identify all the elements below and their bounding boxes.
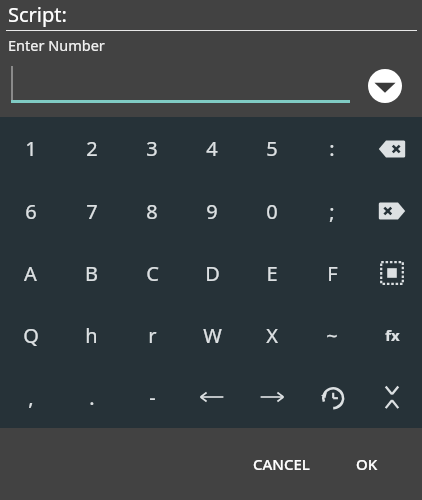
button[interactable]: W [182,304,242,366]
button[interactable]: Show dropdown [368,69,402,103]
button[interactable]: History [302,366,362,428]
staticText: W [203,322,222,349]
staticText: 3 [146,135,158,162]
button[interactable]: E [242,242,302,304]
staticText: CANCEL [253,454,310,474]
button[interactable]: CANCEL [239,444,324,484]
button[interactable]: 1 [0,117,61,180]
staticText: OK [356,454,378,474]
button[interactable]: Delete [362,180,422,242]
staticText: 8 [146,198,158,225]
button[interactable]: 5 [242,117,302,180]
button[interactable]: : [302,117,362,180]
button[interactable]: Q [0,304,61,366]
staticText: fx [385,325,400,345]
button[interactable]: Backspace [362,117,422,180]
staticText: : [329,135,335,162]
staticText: 1 [25,135,37,162]
staticText: 7 [86,198,98,225]
staticText: Enter Number [8,35,105,55]
button[interactable]: ; [302,180,362,242]
button[interactable]: . [61,366,122,428]
button[interactable]: 0 [242,180,302,242]
staticText: E [266,260,278,287]
staticText: - [149,384,156,411]
staticText: C [146,260,159,287]
staticText: ~ [326,322,338,349]
button[interactable]: 7 [61,180,122,242]
staticText: 2 [86,135,98,162]
button[interactable]: C [122,242,182,304]
staticText: . [89,384,95,411]
button[interactable]: h [61,304,122,366]
staticText: 0 [266,198,278,225]
button[interactable]: 9 [182,180,242,242]
staticText: D [205,260,220,287]
staticText: B [85,260,98,287]
staticText: Q [23,322,39,349]
button[interactable]: A [0,242,61,304]
staticText: h [85,322,98,349]
button[interactable]: F [302,242,362,304]
button[interactable]: 6 [0,180,61,242]
staticText: F [327,260,338,287]
button[interactable]: Hide keyboard [362,366,422,428]
button[interactable]: 2 [61,117,122,180]
button[interactable]: 8 [122,180,182,242]
staticText: A [24,260,37,287]
staticText: ; [329,198,335,225]
staticText: r [148,322,157,349]
button[interactable]: Move cursor left [182,366,242,428]
staticText: 5 [266,135,278,162]
staticText: X [266,322,278,349]
button[interactable]: X [242,304,302,366]
button[interactable]: OK [342,444,392,484]
button[interactable]: r [122,304,182,366]
button[interactable]: Select all [362,242,422,304]
staticText: 4 [206,135,218,162]
button[interactable]: - [122,366,182,428]
button[interactable]: fx [362,304,422,366]
button[interactable]: , [0,366,61,428]
staticText: Script: [8,1,67,28]
button[interactable]: B [61,242,122,304]
staticText: , [28,384,34,411]
button[interactable]: 4 [182,117,242,180]
staticText: 9 [206,198,218,225]
button[interactable]: 3 [122,117,182,180]
button[interactable]: D [182,242,242,304]
staticText: 6 [25,198,37,225]
button[interactable]: Move cursor right [242,366,302,428]
button[interactable]: ~ [302,304,362,366]
